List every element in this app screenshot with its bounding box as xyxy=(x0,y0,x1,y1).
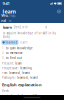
staticText: learned, learnt xyxy=(9,71,30,75)
staticText: Topic xyxy=(9,13,16,23)
button[interactable]: Settings xyxy=(56,9,61,14)
staticText: Participle: xyxy=(2,76,16,79)
staticText: learned, learnt xyxy=(17,76,38,79)
staticText: gain knowledge or skills xyxy=(4,94,38,98)
button[interactable]: Word xyxy=(1,16,8,23)
staticText: Present: xyxy=(2,62,14,65)
staticText: Past: xyxy=(2,71,8,75)
staticText: 1. xyxy=(2,46,5,50)
staticText: to find out xyxy=(6,56,22,60)
staticText: 2. xyxy=(2,51,5,55)
staticText: to gain knowledge xyxy=(6,46,33,50)
staticText: learn xyxy=(2,8,15,15)
staticText: English explanation xyxy=(2,82,42,87)
staticText: learn xyxy=(15,62,22,65)
staticText: to memorize xyxy=(6,51,23,55)
staticText: Progressive: xyxy=(2,66,19,70)
button[interactable]: Topic xyxy=(8,16,16,23)
staticText: [lɜːn] xyxy=(14,25,21,29)
staticText: to acquire knowledge of or skill in by s… xyxy=(2,31,55,38)
staticText: verb xyxy=(22,25,28,29)
staticText: learnt xyxy=(19,41,27,44)
staticText: Verb xyxy=(2,89,9,93)
staticText: learn xyxy=(2,24,12,30)
staticText: learning xyxy=(20,66,32,70)
staticText: learned xyxy=(5,41,17,44)
staticText: Word xyxy=(1,13,8,23)
staticText: 3. xyxy=(2,56,5,60)
staticText: 9:41 xyxy=(2,1,9,6)
